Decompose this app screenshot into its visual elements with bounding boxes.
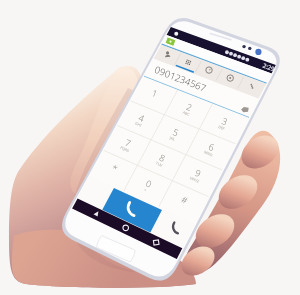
button[interactable]: Hand holding a phone showing the dialer: [0, 0, 300, 295]
other: Hand holding a phone showing the dialer: [0, 0, 300, 295]
